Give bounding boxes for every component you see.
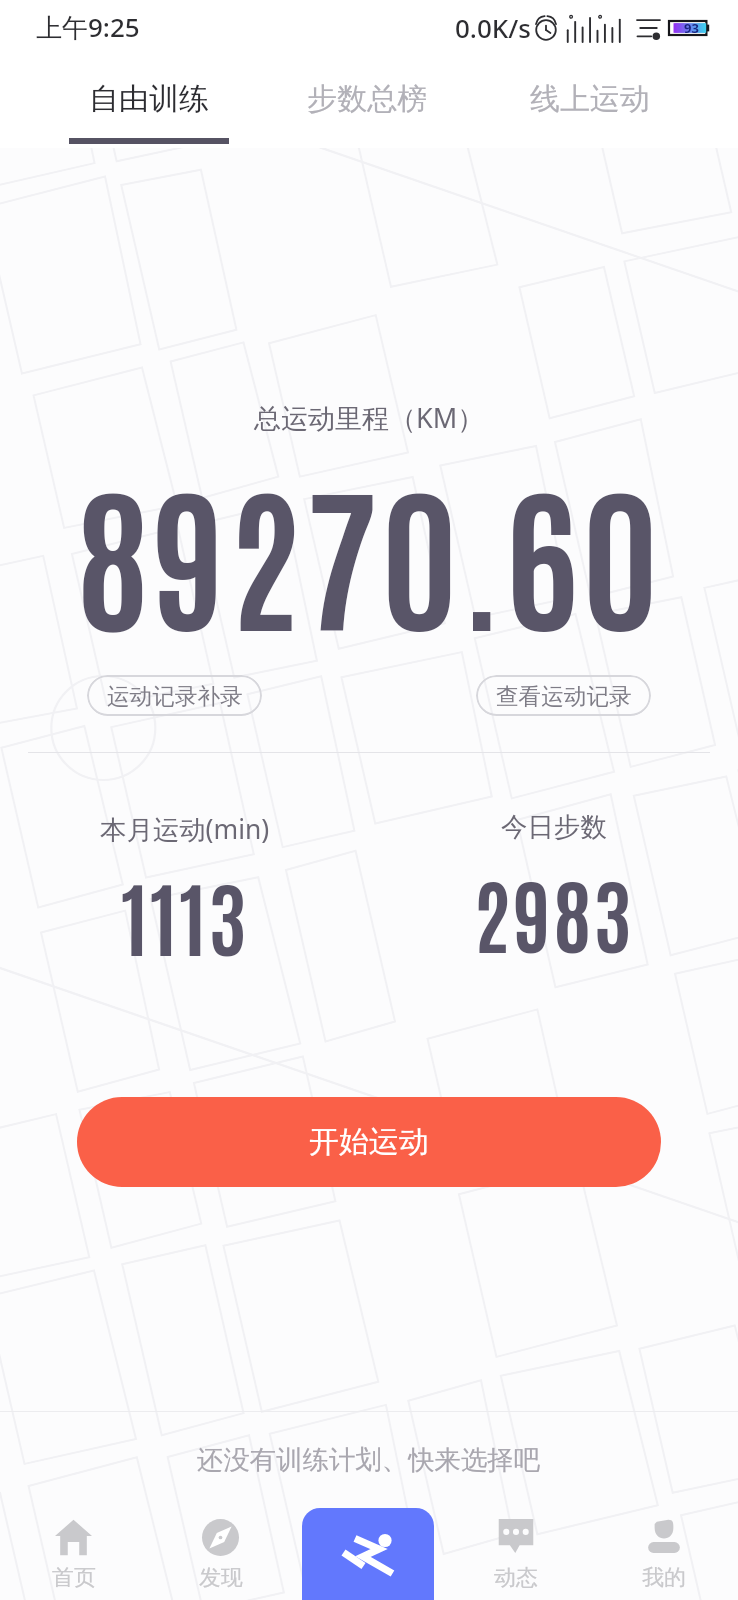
staticText: 线上运动 (530, 80, 650, 118)
staticText: 今日步数 (501, 811, 607, 844)
staticText: 总运动里程（KM） (254, 399, 485, 436)
staticText: 2983 (473, 858, 634, 964)
button[interactable]: 首页 (0, 1508, 147, 1600)
button[interactable]: 查看运动记录 (476, 675, 651, 716)
button[interactable]: 我的 (590, 1508, 738, 1600)
button[interactable]: 步数总榜 (287, 66, 447, 144)
staticText: 自由训练 (89, 80, 209, 118)
button[interactable]: 线上运动 (510, 66, 670, 144)
staticText: 上午9:25 (36, 9, 140, 45)
staticText: 1113 (121, 861, 249, 967)
staticText: 还没有训练计划、快来选择吧 (197, 1444, 541, 1477)
button[interactable]: 自由训练 (69, 66, 229, 144)
staticText: 运动记录补录 (107, 682, 243, 710)
button[interactable]: 发现 (147, 1508, 294, 1600)
staticText: 0.0K/s (455, 10, 531, 45)
staticText: 89270.60 (76, 449, 663, 653)
button[interactable]: 开始运动 (302, 1508, 434, 1600)
button[interactable]: 动态 (442, 1508, 590, 1600)
staticText: 我的 (642, 1564, 686, 1592)
staticText: 动态 (494, 1564, 538, 1592)
staticText: 发现 (199, 1564, 243, 1592)
button[interactable]: 开始运动 (77, 1097, 661, 1187)
staticText: 开始运动 (309, 1123, 429, 1161)
button[interactable]: 还没有训练计划、快来选择吧 (0, 1412, 738, 1508)
staticText: 首页 (52, 1564, 96, 1592)
staticText: 本月运动(min) (100, 811, 270, 847)
staticText: 93 (684, 19, 699, 37)
staticText: 查看运动记录 (496, 682, 632, 710)
staticText: 步数总榜 (307, 80, 427, 118)
button[interactable]: 运动记录补录 (87, 675, 262, 716)
